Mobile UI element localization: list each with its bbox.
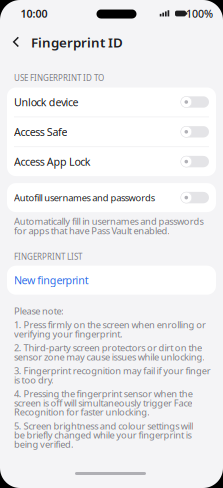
button[interactable]: [12, 36, 24, 48]
button[interactable]: Access App Lock: [7, 147, 216, 176]
button[interactable]: Access Safe: [7, 117, 216, 146]
staticText: USE FINGERPRINT ID TO: [14, 73, 104, 83]
staticText: New fingerprint: [14, 273, 89, 287]
staticText: screen is off will simultaneously trigge…: [14, 397, 192, 409]
staticText: verifying your fingerprint.: [14, 328, 123, 340]
staticText: 4. Pressing the fingerprint sensor when …: [14, 387, 193, 400]
button[interactable]: Unlock device: [7, 87, 216, 116]
staticText: 2. Third-party screen protectors or dirt…: [14, 341, 202, 354]
staticText: Please note:: [14, 305, 64, 317]
staticText: 10:00: [20, 6, 47, 21]
staticText: for apps that have Pass Vault enabled.: [14, 225, 170, 237]
staticText: Access Safe: [14, 125, 67, 139]
staticText: Autofill usernames and passwords: [14, 191, 155, 204]
staticText: sensor zone may cause issues while unloc…: [14, 351, 205, 363]
staticText: 5. Screen brightness and colour settings…: [14, 420, 193, 432]
staticText: Access App Lock: [14, 154, 91, 169]
staticText: Recognition for faster unlocking.: [14, 406, 150, 418]
staticText: Automatically fill in usernames and pass…: [14, 215, 203, 227]
staticText: FINGERPRINT LIST: [14, 251, 82, 262]
button[interactable]: New fingerprint: [7, 266, 216, 295]
staticText: 100%: [186, 6, 213, 21]
staticText: Fingerprint ID: [31, 33, 123, 51]
staticText: being verified.: [14, 438, 74, 450]
staticText: 3. Fingerprint recognition may fail if y…: [14, 364, 211, 377]
button[interactable]: Autofill usernames and passwords: [7, 183, 216, 212]
staticText: be briefly changed while your fingerprin…: [14, 429, 191, 441]
staticText: 1. Press firmly on the screen when enrol…: [14, 318, 206, 331]
staticText: is too dry.: [14, 374, 54, 386]
staticText: Unlock device: [14, 95, 79, 109]
